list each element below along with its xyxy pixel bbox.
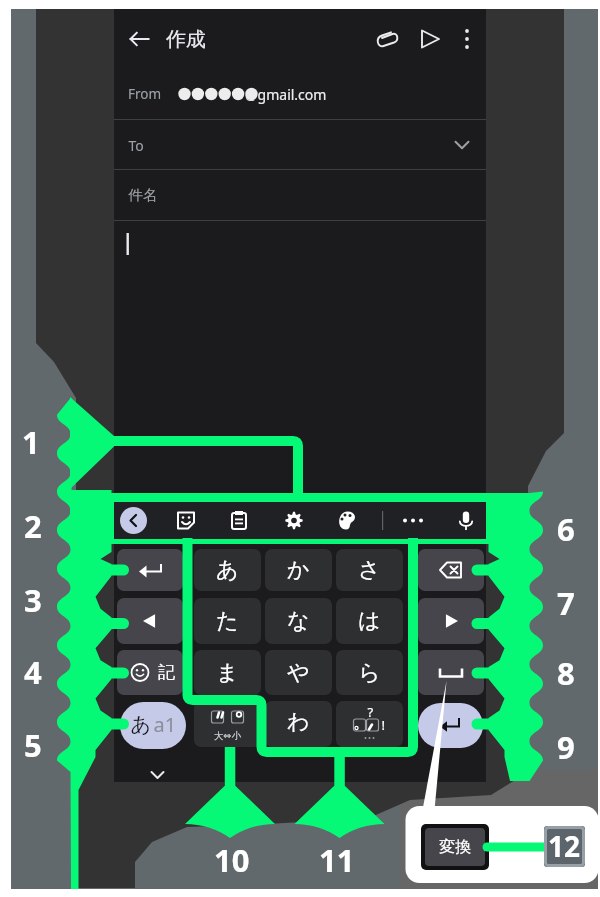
button[interactable] [0, 0, 600, 897]
